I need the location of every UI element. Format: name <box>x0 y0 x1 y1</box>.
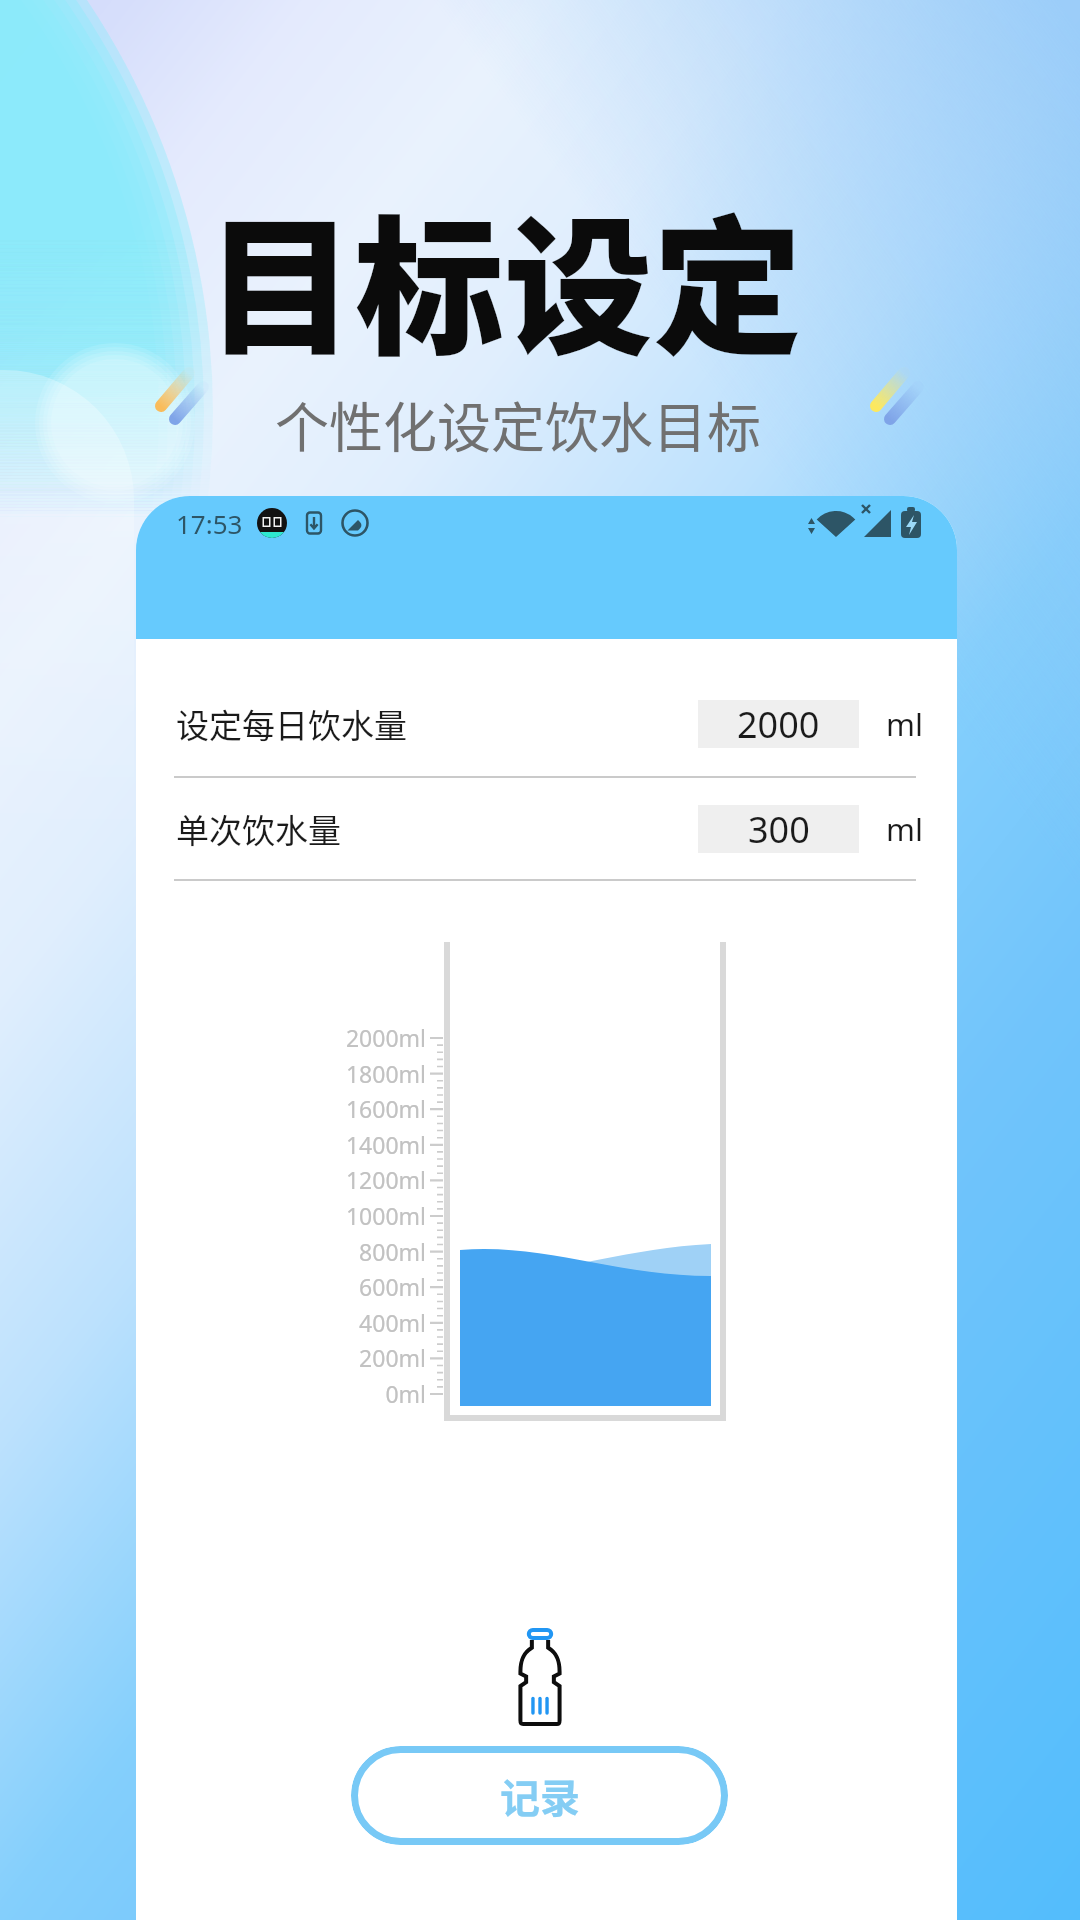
staticText: 200ml <box>254 1342 426 1373</box>
button[interactable]: 记录 <box>351 1746 728 1845</box>
staticText: 目标设定 <box>0 169 1044 385</box>
staticText: 17:53 <box>176 506 243 541</box>
staticText: 300 <box>748 805 810 853</box>
button[interactable]: 设定每日饮水量 <box>136 671 957 776</box>
staticText: 2000 <box>737 700 820 748</box>
staticText: 800ml <box>254 1236 426 1267</box>
button[interactable]: 300 <box>698 805 859 853</box>
button[interactable]: Add a glass of water <box>518 1618 562 1726</box>
staticText: 600ml <box>254 1271 426 1302</box>
button[interactable]: 2000 <box>698 700 859 748</box>
staticText: ml <box>886 808 923 850</box>
staticText: 1000ml <box>254 1200 426 1231</box>
staticText: 2000ml <box>254 1022 426 1053</box>
staticText: 1600ml <box>254 1093 426 1124</box>
staticText: 个性化设定饮水目标 <box>0 385 1058 463</box>
staticText: ml <box>886 703 923 745</box>
button[interactable]: 单次饮水量 <box>136 778 957 879</box>
staticText: 1400ml <box>254 1129 426 1160</box>
staticText: 1800ml <box>254 1058 426 1089</box>
staticText: 0ml <box>254 1378 426 1409</box>
staticText: 1200ml <box>254 1164 426 1195</box>
staticText: 设定每日饮水量 <box>176 700 407 748</box>
staticText: 400ml <box>254 1307 426 1338</box>
staticText: 记录 <box>500 1767 580 1825</box>
staticText: 单次饮水量 <box>176 805 341 853</box>
